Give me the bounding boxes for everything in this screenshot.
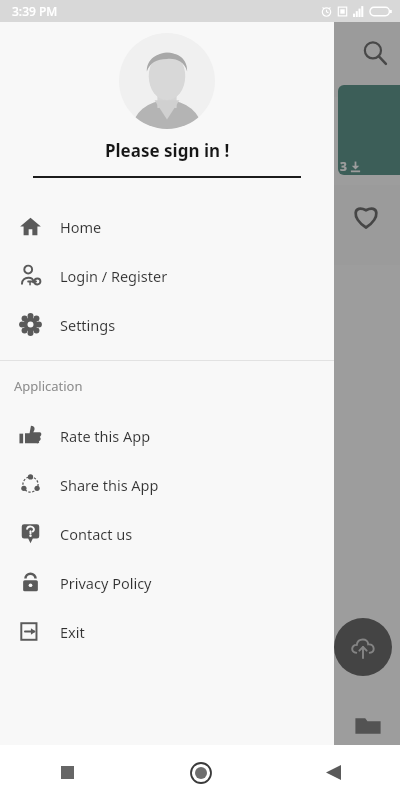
other: Folder <box>354 712 382 740</box>
staticText: Application <box>14 377 83 395</box>
staticText: Privacy Policy <box>60 573 152 593</box>
button[interactable]: Login / Register <box>0 251 334 300</box>
button[interactable]: Settings <box>0 300 334 349</box>
staticText: Settings <box>60 315 116 335</box>
button[interactable]: Upload <box>334 618 392 676</box>
button[interactable]: Rate this App <box>0 411 334 460</box>
other: Search <box>362 40 388 66</box>
staticText: 3 <box>340 158 347 174</box>
button[interactable]: Share this App <box>0 460 334 509</box>
button[interactable]: Home <box>134 745 267 800</box>
staticText: Rate this App <box>60 426 151 446</box>
button[interactable]: Home <box>0 202 334 251</box>
button[interactable]: Exit <box>0 607 334 656</box>
button[interactable]: Privacy Policy <box>0 558 334 607</box>
staticText: 3:39 PM <box>12 3 58 19</box>
button[interactable]: Back <box>267 745 400 800</box>
staticText: Login / Register <box>60 266 168 286</box>
other: Favourite <box>350 200 382 232</box>
button[interactable]: Contact us <box>0 509 334 558</box>
staticText: Contact us <box>60 524 133 544</box>
staticText: Share this App <box>60 475 159 495</box>
staticText: Home <box>60 217 102 237</box>
staticText: Please sign in ! <box>105 139 230 162</box>
button[interactable]: Recents <box>0 745 134 800</box>
staticText: Exit <box>60 622 85 642</box>
